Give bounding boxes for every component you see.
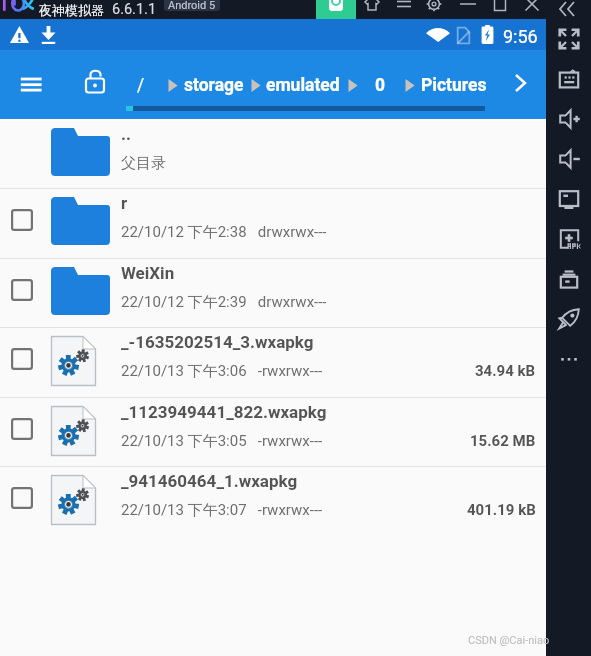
staticText: 22/10/12 下午2:38 drwxrwx--- [121,223,327,242]
staticText: 34.94 kB [475,362,536,380]
staticText: 22/10/13 下午3:07 -rwxrwx--- [121,501,323,520]
button[interactable]: 0 [375,75,386,96]
staticText: 夜神模拟器 [39,2,104,18]
button[interactable]: More [546,339,591,379]
staticText: 22/10/13 下午3:06 -rwxrwx--- [121,362,323,381]
button[interactable]: Volume down [546,139,591,179]
button[interactable]: Select _1123949441_822.wxapkg [11,418,33,440]
staticText: 22/10/13 下午3:05 -rwxrwx--- [121,432,323,451]
button[interactable]: Install APK [546,219,591,259]
staticText: _941460464_1.wxapkg [121,471,298,491]
button[interactable]: Menu [14,66,48,100]
button[interactable]: Fullscreen [546,19,591,59]
button[interactable]: / [137,75,145,96]
staticText: _-1635202514_3.wxapkg [121,332,314,352]
staticText: 401.19 kB [467,501,536,519]
button[interactable]: Pictures [421,75,487,96]
staticText: 15.62 MB [470,432,536,450]
button[interactable]: Select r [11,209,33,231]
button[interactable]: Select WeiXin [11,279,33,301]
staticText: r [121,193,128,213]
button[interactable]: Collapse toolbar [556,0,580,22]
staticText: Android 5 [168,0,216,11]
staticText: WeiXin [121,263,175,283]
button[interactable]: Select _-1635202514_3.wxapkg [0,327,546,397]
staticText: 22/10/12 下午2:39 drwxrwx--- [121,293,327,312]
button[interactable]: Unlock [78,64,112,98]
button[interactable]: .. [0,119,546,188]
button[interactable]: Keyboard [546,59,591,99]
button[interactable]: Shared folder [546,259,591,299]
staticText: 9:56 [503,26,538,47]
button[interactable]: Scroll right [503,66,537,100]
button[interactable]: emulated [266,75,340,96]
button[interactable]: storage [184,75,244,96]
button[interactable]: Select _1123949441_822.wxapkg [0,397,546,466]
button[interactable]: Volume up [546,99,591,139]
button[interactable]: Select _941460464_1.wxapkg [0,466,546,536]
button[interactable]: Screenshot [546,179,591,219]
button[interactable]: Select _941460464_1.wxapkg [11,487,33,509]
staticText: 6.6.1.1 [112,1,157,18]
button[interactable]: Boost [546,299,591,339]
staticText: CSDN @Cai-niao [468,634,550,647]
staticText: _1123949441_822.wxapkg [121,402,327,422]
button[interactable]: Select _-1635202514_3.wxapkg [11,348,33,370]
staticText: .. [121,124,131,144]
button[interactable]: Select WeiXin [0,258,546,328]
staticText: 父目录 [121,154,166,173]
button[interactable]: Select r [0,188,546,258]
